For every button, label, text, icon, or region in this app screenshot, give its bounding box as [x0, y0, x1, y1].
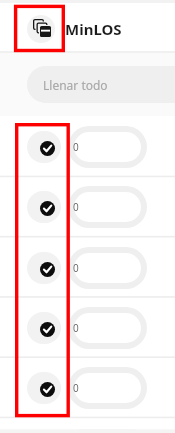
staticText: 0 — [73, 140, 79, 154]
button[interactable]: 0 — [68, 307, 147, 349]
button[interactable]: Llenar todo — [27, 66, 175, 103]
button[interactable]: 0 — [68, 427, 147, 433]
button[interactable]: 0 — [68, 126, 147, 168]
staticText: 0 — [73, 381, 79, 395]
staticText: 0 — [73, 200, 79, 214]
button[interactable]: Stacked layers — [27, 15, 55, 43]
button[interactable]: Toggle checked — [27, 131, 61, 163]
button[interactable]: Toggle checked — [27, 252, 61, 284]
button[interactable]: 0 — [68, 186, 147, 228]
button[interactable]: 0 — [68, 247, 147, 289]
staticText: 0 — [73, 321, 79, 335]
button[interactable]: Toggle checked — [27, 312, 61, 344]
button[interactable]: Toggle checked — [27, 191, 61, 223]
staticText: MinLOS — [65, 19, 122, 39]
staticText: 0 — [73, 261, 79, 275]
button[interactable]: 0 — [68, 367, 147, 409]
button[interactable]: Toggle checked — [27, 372, 61, 404]
staticText: Llenar todo — [43, 77, 108, 93]
